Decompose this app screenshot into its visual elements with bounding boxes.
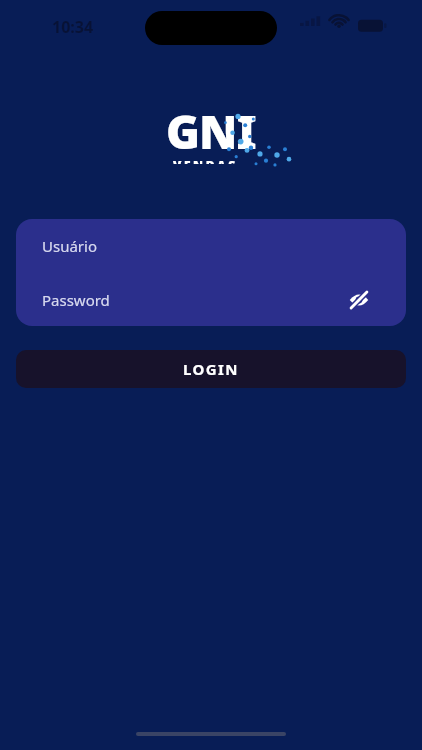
button[interactable]: Toggle password visibility (346, 287, 372, 313)
staticText: VENDAS (173, 157, 238, 164)
staticText: 10:34 (52, 16, 94, 38)
staticText: Usuário (42, 236, 97, 256)
staticText: GNI (166, 100, 256, 163)
staticText: Password (42, 290, 110, 310)
button[interactable]: Usuário (16, 219, 406, 273)
button[interactable]: LOGIN (16, 350, 406, 388)
button[interactable]: Password (16, 273, 406, 326)
staticText: LOGIN (183, 359, 239, 379)
